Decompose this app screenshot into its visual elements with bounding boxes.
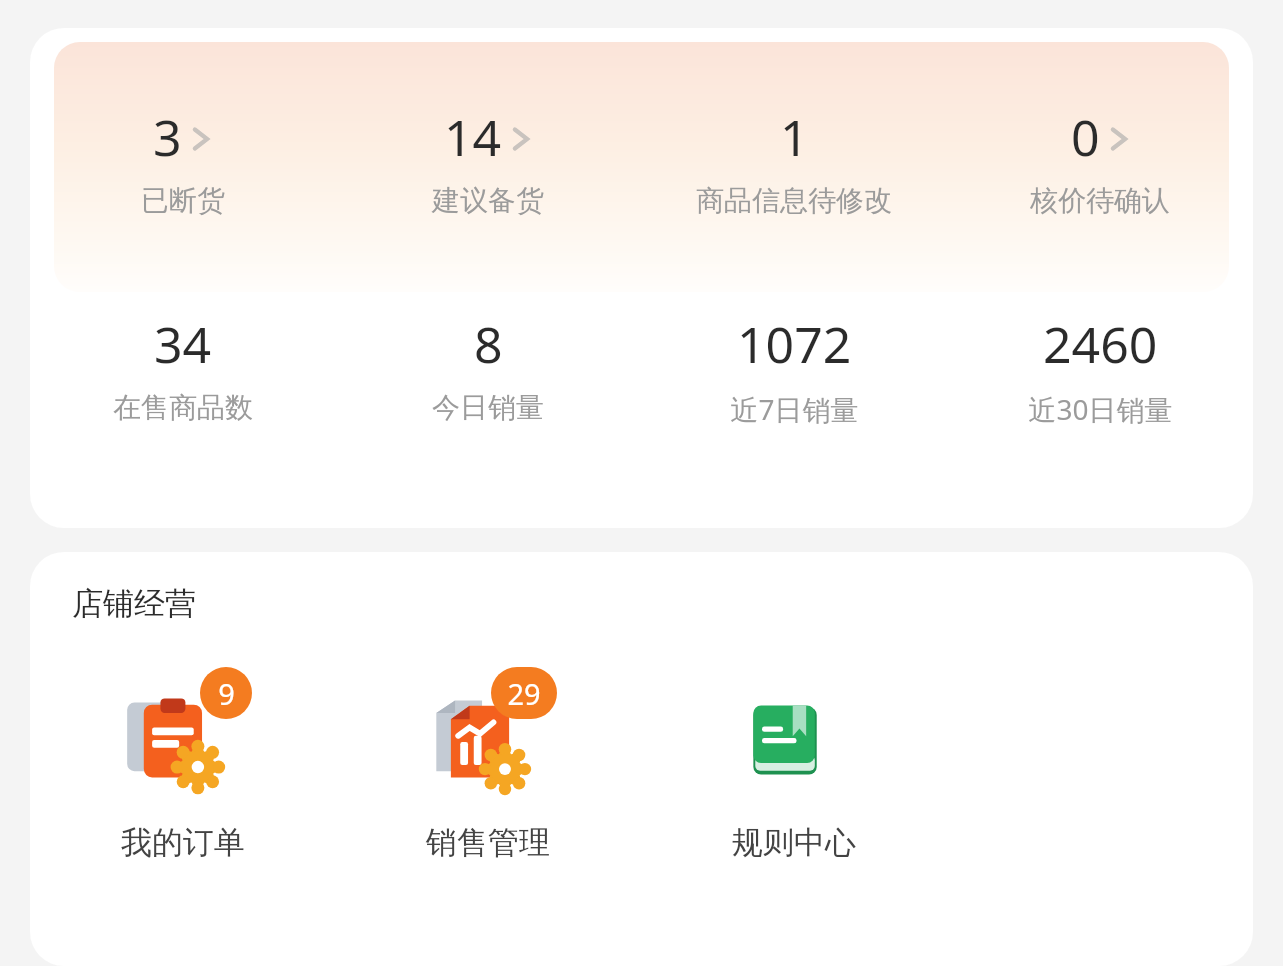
button[interactable]: 8 xyxy=(335,310,641,425)
staticText: 建议备货 xyxy=(432,183,544,218)
button[interactable]: 1072 xyxy=(641,310,947,428)
staticText: 销售管理 xyxy=(426,823,550,862)
button[interactable]: 3 xyxy=(30,103,335,218)
staticText: 我的订单 xyxy=(121,823,245,862)
staticText: 近7日销量 xyxy=(730,390,859,428)
staticText: 2460 xyxy=(1043,310,1158,378)
staticText: 今日销量 xyxy=(432,390,544,425)
other: 我的订单 xyxy=(123,688,227,792)
button[interactable]: 规则中心 xyxy=(641,667,947,862)
button[interactable]: 14 xyxy=(335,103,641,218)
staticText: 14 xyxy=(444,103,502,171)
button[interactable]: 我的订单 xyxy=(30,667,335,862)
button[interactable]: 销售管理 xyxy=(335,667,641,862)
button[interactable]: 2460 xyxy=(947,310,1253,428)
button[interactable]: 1 xyxy=(641,103,947,218)
other: 销售管理 xyxy=(428,688,532,792)
staticText: 近30日销量 xyxy=(1028,390,1173,428)
staticText: 店铺经营 xyxy=(72,584,196,623)
staticText: 0 xyxy=(1071,103,1100,171)
staticText: 规则中心 xyxy=(732,823,856,862)
staticText: 29 xyxy=(507,674,541,713)
staticText: 34 xyxy=(154,310,212,378)
staticText: 商品信息待修改 xyxy=(696,183,892,218)
staticText: 在售商品数 xyxy=(113,390,253,425)
staticText: 9 xyxy=(218,674,235,713)
button[interactable]: 34 xyxy=(30,310,335,425)
staticText: 已断货 xyxy=(141,183,225,218)
button[interactable]: 0 xyxy=(947,103,1253,218)
staticText: 1 xyxy=(780,103,809,171)
staticText: 3 xyxy=(153,103,182,171)
staticText: 核价待确认 xyxy=(1030,183,1170,218)
other: 规则中心 xyxy=(738,692,834,788)
staticText: 8 xyxy=(474,310,503,378)
staticText: 1072 xyxy=(737,310,852,378)
